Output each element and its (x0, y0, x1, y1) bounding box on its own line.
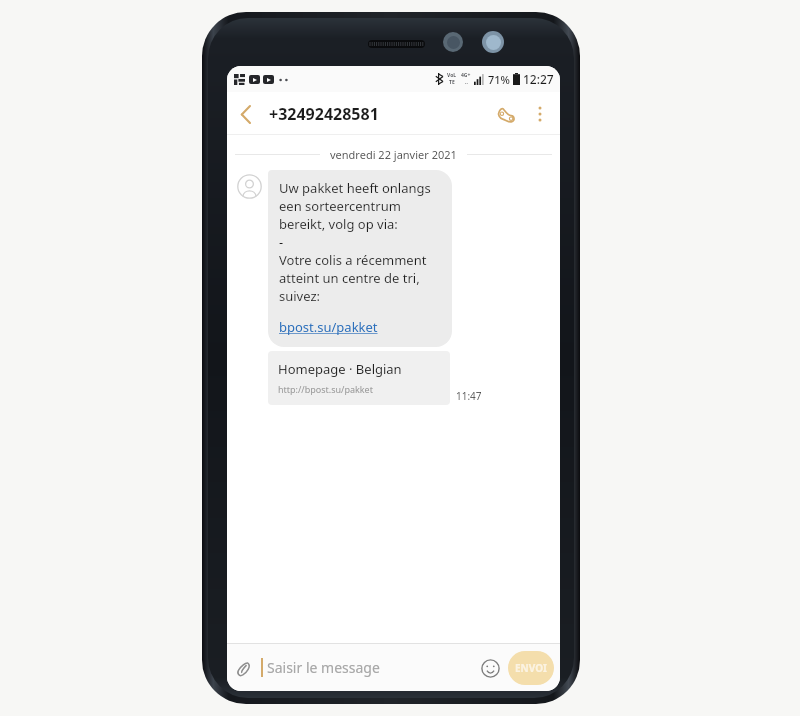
staticText: 12:27 (523, 71, 554, 87)
staticText: 4G+ (461, 72, 471, 79)
button[interactable]: Homepage · Belgian (268, 351, 450, 405)
staticText: 71% (488, 72, 510, 87)
button[interactable]: Call (488, 96, 524, 132)
staticText: TE (449, 79, 455, 86)
staticText: 11:47 (456, 389, 482, 403)
staticText: Saisir le message (267, 658, 474, 677)
button[interactable]: Attach (227, 651, 261, 685)
staticText: +32492428581 (269, 103, 379, 125)
button[interactable]: Back (227, 96, 263, 132)
staticText: .. (465, 79, 468, 86)
staticText: http://bpost.su/pakket (278, 383, 373, 395)
button[interactable]: Uw pakket heeft onlangs een sorteercentr… (268, 170, 452, 347)
staticText: Homepage · Belgian (278, 360, 402, 378)
button[interactable]: More options (524, 98, 556, 130)
staticText: ENVOI (515, 661, 547, 675)
staticText: vendredi 22 janvier 2021 (330, 147, 457, 162)
button[interactable]: bpost.su/pakket (279, 318, 378, 336)
staticText: VoL (447, 72, 457, 79)
button[interactable]: ENVOI (508, 651, 554, 685)
button[interactable]: Emoji (474, 652, 506, 684)
staticText: Uw pakket heeft onlangs een sorteercentr… (279, 179, 441, 305)
